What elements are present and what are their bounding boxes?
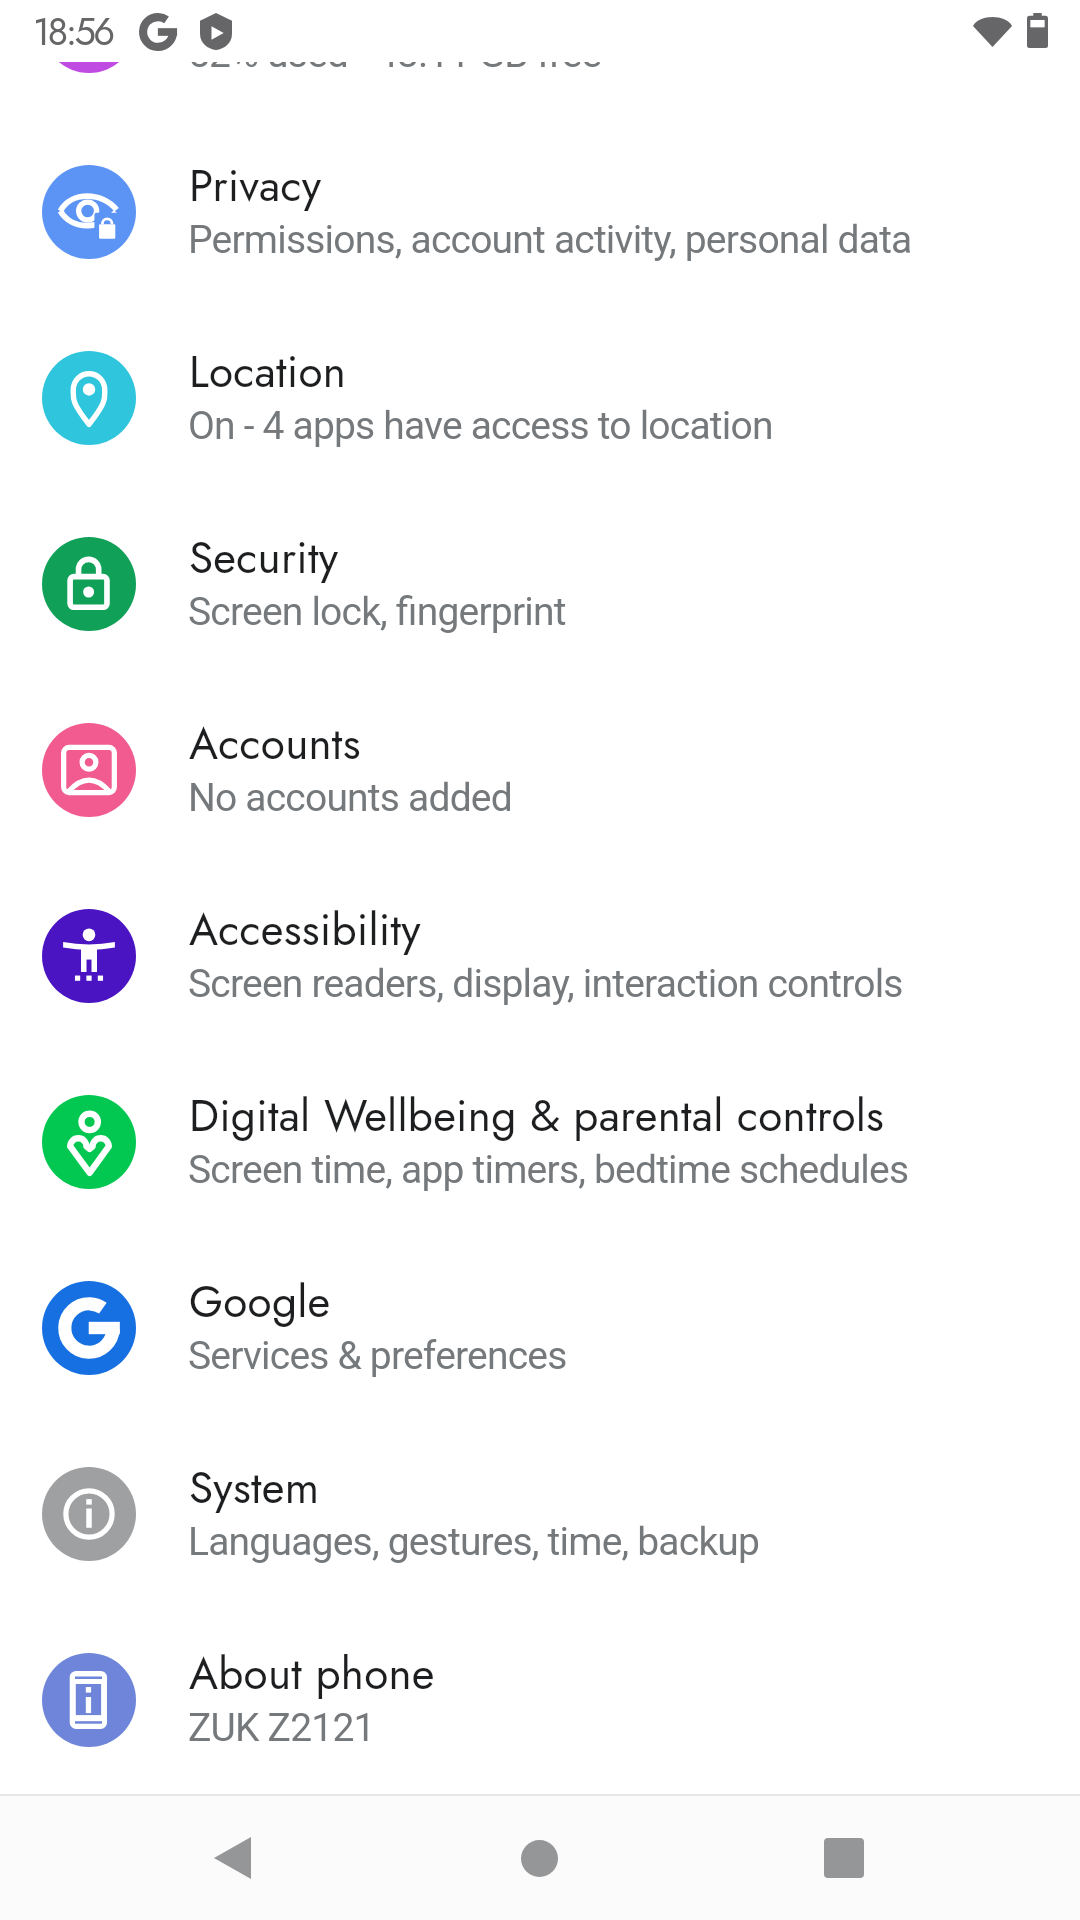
staticText: On - 4 apps have access to location: [188, 403, 1080, 449]
staticText: About phone: [189, 1642, 1080, 1706]
staticText: Location: [189, 340, 1080, 404]
button[interactable]: Digital Wellbeing & parental controls: [0, 1049, 1080, 1235]
staticText: Privacy: [189, 154, 1080, 218]
staticText: Screen lock, fingerprint: [188, 589, 1080, 635]
button[interactable]: Accounts: [0, 677, 1080, 863]
staticText: Permissions, account activity, personal …: [188, 217, 1080, 263]
button[interactable]: Back: [150, 1796, 315, 1920]
button[interactable]: Security: [0, 491, 1080, 677]
staticText: Screen time, app timers, bedtime schedul…: [188, 1147, 1080, 1193]
staticText: Security: [189, 526, 1080, 590]
staticText: Languages, gestures, time, backup: [188, 1519, 1080, 1565]
button[interactable]: Home: [457, 1796, 622, 1920]
staticText: Screen readers, display, interaction con…: [188, 961, 1080, 1007]
button[interactable]: System: [0, 1421, 1080, 1607]
staticText: No accounts added: [188, 775, 1080, 821]
button[interactable]: About phone: [0, 1607, 1080, 1793]
button[interactable]: Location: [0, 305, 1080, 491]
staticText: Digital Wellbeing & parental controls: [189, 1084, 1080, 1148]
staticText: System: [189, 1456, 1080, 1520]
button[interactable]: Privacy: [0, 119, 1080, 305]
staticText: 18:56: [33, 4, 113, 59]
staticText: Services & preferences: [188, 1333, 1080, 1379]
staticText: Accounts: [189, 712, 1080, 776]
button[interactable]: Recent apps: [761, 1796, 926, 1920]
button[interactable]: Storage: [0, 62, 1080, 119]
staticText: Google: [189, 1270, 1080, 1334]
button[interactable]: Google: [0, 1235, 1080, 1421]
staticText: ZUK Z2121: [188, 1705, 1080, 1751]
staticText: Accessibility: [189, 898, 1080, 962]
staticText: 52% used - 48.11 GB free: [188, 62, 1080, 77]
button[interactable]: Accessibility: [0, 863, 1080, 1049]
